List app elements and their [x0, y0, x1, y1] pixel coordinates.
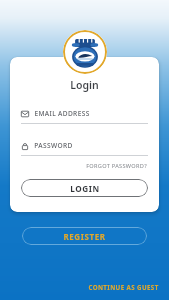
- staticText: EMAIL ADDRESS: [34, 109, 90, 118]
- button[interactable]: LOGIN: [21, 179, 148, 197]
- button[interactable]: FORGOT PASSWORD?: [85, 161, 148, 171]
- staticText: FORGOT PASSWORD?: [86, 162, 147, 170]
- other: App logo: [63, 30, 107, 74]
- staticText: CONTINUE AS GUEST: [88, 283, 159, 291]
- staticText: PASSWORD: [34, 141, 73, 150]
- button[interactable]: REGISTER: [22, 227, 147, 245]
- staticText: Login: [70, 78, 99, 92]
- button[interactable]: EMAIL ADDRESS: [21, 109, 148, 124]
- button[interactable]: CONTINUE AS GUEST: [86, 281, 161, 293]
- staticText: REGISTER: [63, 231, 106, 242]
- staticText: LOGIN: [70, 183, 100, 194]
- button[interactable]: PASSWORD: [21, 141, 148, 156]
